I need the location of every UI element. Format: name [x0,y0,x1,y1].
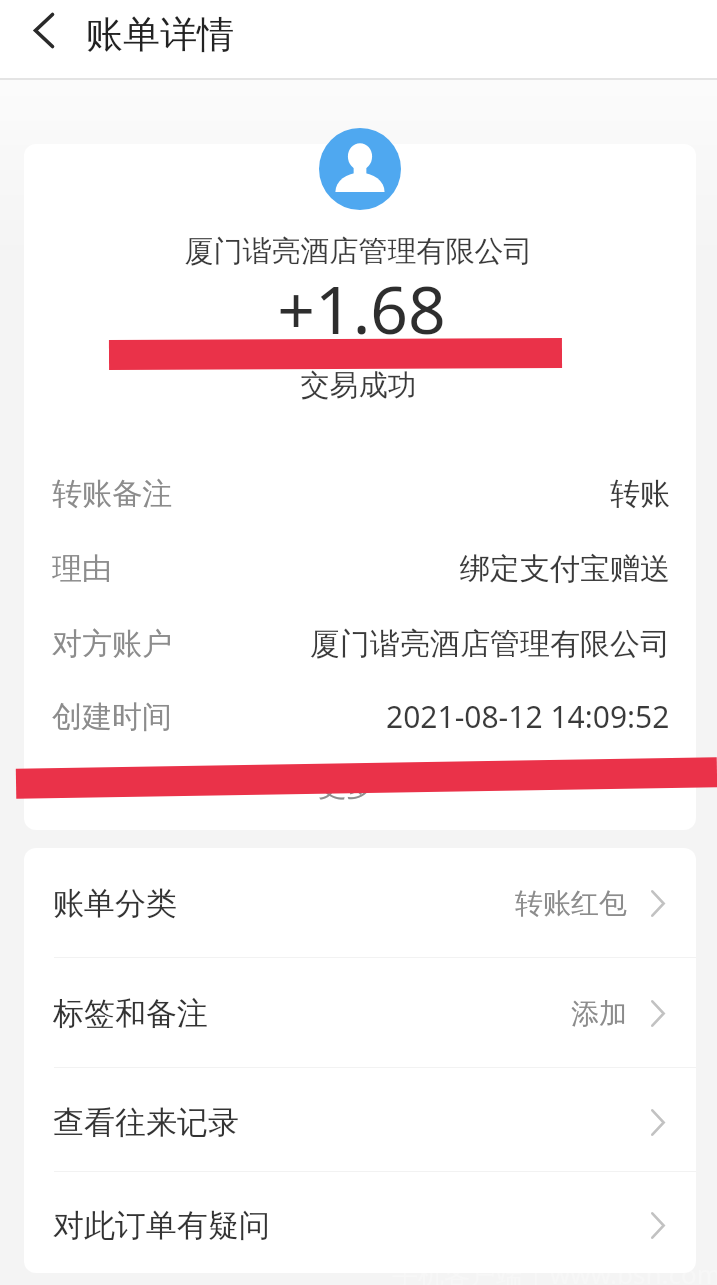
button[interactable]: 更多 [0,769,717,801]
staticText: 转账 [610,475,670,513]
staticText: 厦门谐亮酒店管理有限公司 [310,625,670,663]
button[interactable]: 标签和备注 [24,958,696,1068]
button[interactable]: Back [11,0,77,63]
staticText: 更多 [318,769,374,801]
button[interactable]: 查看往来记录 [24,1068,696,1172]
staticText: 创建时间 [52,698,172,736]
staticText: 账单详情 [86,11,234,58]
staticText: 厦门谐亮酒店管理有限公司 [0,233,717,270]
staticText: 添加 [571,996,627,1031]
staticText: 理由 [52,550,112,588]
staticText: 手机客户端 | www.bsn.com [392,1256,717,1285]
staticText: 账单分类 [53,884,177,923]
staticText: 对此订单有疑问 [53,1206,270,1245]
staticText: 对方账户 [52,625,172,663]
staticText: +1.68 [3,263,717,353]
staticText: 绑定支付宝赠送 [460,550,670,588]
staticText: 交易成功 [0,367,717,404]
staticText: 2021-08-12 14:09:52 [386,696,670,737]
staticText: 标签和备注 [53,994,208,1033]
button[interactable]: 对此订单有疑问 [24,1172,696,1273]
staticText: 转账备注 [52,475,172,513]
button[interactable]: 账单分类 [24,848,696,958]
staticText: 转账红包 [515,886,627,921]
staticText: 查看往来记录 [53,1103,239,1142]
